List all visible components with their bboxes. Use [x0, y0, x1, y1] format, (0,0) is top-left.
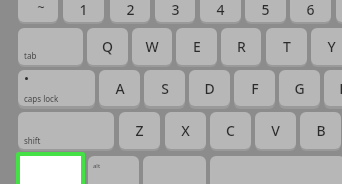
staticText: S — [161, 79, 169, 98]
button[interactable]: Q — [87, 28, 128, 65]
button[interactable]: T — [266, 28, 307, 65]
button[interactable]: 7 — [336, 0, 342, 22]
staticText: caps lock — [24, 93, 59, 104]
staticText: 6 — [306, 0, 315, 19]
button[interactable]: selected key — [16, 152, 85, 184]
staticText: Q — [102, 37, 113, 56]
button[interactable]: V — [255, 112, 296, 149]
button[interactable]: D — [189, 70, 230, 106]
staticText: 3 — [171, 0, 180, 19]
staticText: 4 — [216, 0, 225, 19]
button[interactable]: Z — [119, 112, 160, 149]
staticText: X — [181, 121, 190, 140]
button[interactable]: A — [99, 70, 140, 106]
staticText: H — [339, 79, 342, 98]
staticText: tab — [24, 50, 37, 61]
button[interactable]: 5 — [245, 0, 286, 22]
staticText: A — [115, 79, 125, 98]
staticText: shift — [24, 135, 41, 146]
button[interactable]: F — [234, 70, 275, 106]
button[interactable]: R — [221, 28, 261, 65]
staticText: ~ — [37, 0, 45, 16]
button[interactable]: C — [210, 112, 251, 149]
staticText: C — [226, 121, 235, 140]
button[interactable]: 2 — [110, 0, 150, 22]
staticText: F — [251, 79, 259, 98]
staticText: 1 — [79, 0, 88, 19]
staticText: V — [271, 121, 280, 140]
button[interactable]: ~ — [18, 0, 58, 22]
button[interactable]: shift — [18, 112, 114, 149]
staticText: R — [237, 37, 246, 56]
staticText: 5 — [261, 0, 270, 19]
button[interactable]: 4 — [200, 0, 241, 22]
staticText: Z — [135, 121, 144, 140]
button[interactable]: H — [324, 70, 342, 106]
button[interactable]: B — [300, 112, 341, 149]
button[interactable]: X — [165, 112, 206, 149]
button[interactable]: alt — [88, 156, 139, 184]
staticText: E — [193, 37, 201, 56]
staticText: W — [145, 37, 159, 56]
button[interactable]: 1 — [63, 0, 104, 22]
button[interactable]: G — [279, 70, 320, 106]
staticText: alt — [93, 162, 101, 170]
button[interactable]: 6 — [290, 0, 331, 22]
button[interactable]: S — [144, 70, 185, 106]
button[interactable]: caps lock — [18, 70, 95, 106]
staticText: 2 — [126, 0, 135, 19]
button[interactable]: E — [176, 28, 217, 65]
staticText: D — [204, 79, 215, 98]
button[interactable]: 3 — [155, 0, 195, 22]
staticText: B — [316, 121, 326, 140]
staticText: Y — [327, 37, 336, 56]
button[interactable]: W — [132, 28, 172, 65]
button[interactable]: Y — [311, 28, 342, 65]
button[interactable]: command — [143, 156, 206, 184]
staticText: T — [283, 37, 291, 56]
staticText: G — [294, 79, 305, 98]
button[interactable]: tab — [18, 28, 83, 65]
